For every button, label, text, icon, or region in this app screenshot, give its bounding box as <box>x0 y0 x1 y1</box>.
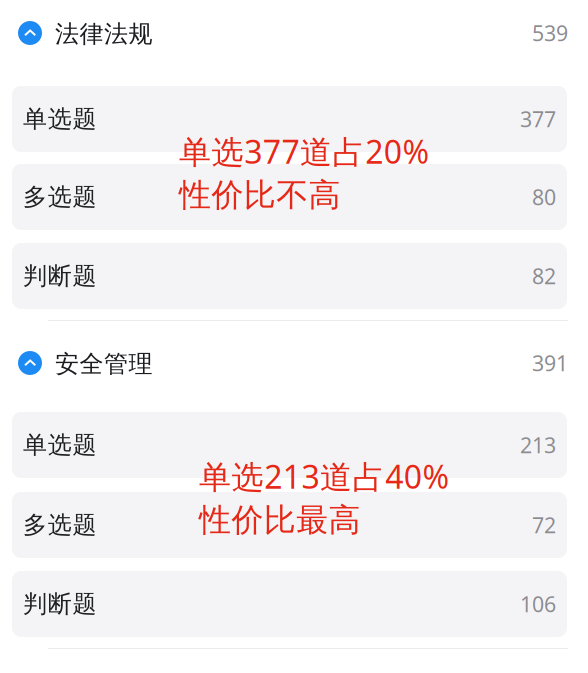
staticText: 法律法规 <box>55 19 152 49</box>
staticText: 多选题 <box>23 182 97 212</box>
staticText: 82 <box>532 262 556 290</box>
button[interactable]: 多选题 <box>12 164 567 230</box>
staticText: 391 <box>532 349 568 377</box>
staticText: 80 <box>532 183 556 211</box>
staticText: 性价比最高 <box>199 500 361 540</box>
staticText: 单选213道占40% <box>199 455 449 497</box>
staticText: 单选题 <box>23 430 97 460</box>
staticText: 213 <box>520 431 556 459</box>
staticText: 72 <box>532 511 556 539</box>
staticText: 单选377道占20% <box>179 130 429 172</box>
button[interactable]: 单选题 <box>12 412 567 478</box>
staticText: 539 <box>532 19 568 47</box>
button[interactable]: 安全管理 <box>0 339 588 387</box>
staticText: 377 <box>520 105 556 133</box>
button[interactable]: 多选题 <box>12 492 567 558</box>
staticText: 判断题 <box>23 261 97 291</box>
staticText: 性价比不高 <box>179 175 341 215</box>
button[interactable]: 判断题 <box>12 571 567 637</box>
button[interactable]: 单选题 <box>12 86 567 152</box>
staticText: 判断题 <box>23 589 97 619</box>
staticText: 单选题 <box>23 104 97 134</box>
button[interactable]: 法律法规 <box>0 9 588 57</box>
button[interactable]: 判断题 <box>12 243 567 309</box>
staticText: 安全管理 <box>55 349 152 379</box>
staticText: 多选题 <box>23 510 97 540</box>
staticText: 106 <box>520 590 556 618</box>
